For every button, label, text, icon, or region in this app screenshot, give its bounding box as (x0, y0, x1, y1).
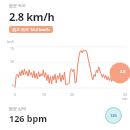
staticText: 최고 속도 14.2 km/h (12, 27, 50, 32)
button[interactable]: 평균 심박 (0, 106, 130, 124)
staticText: 126 (110, 113, 117, 118)
staticText: 10 (10, 59, 15, 64)
staticText: min (122, 97, 128, 101)
staticText: 평균 심박 (9, 106, 27, 111)
other: Heart rate zone (105, 107, 122, 124)
staticText: 20 (70, 92, 75, 97)
staticText: 126 bpm (9, 112, 47, 124)
staticText: 평균 속도 (9, 3, 27, 8)
staticText: 0 (14, 92, 17, 97)
staticText: 2.8 (120, 69, 126, 74)
staticText: 30 (123, 92, 128, 97)
staticText: km/h (7, 40, 15, 44)
staticText: 15 (10, 46, 15, 51)
staticText: 10 (42, 92, 47, 97)
button[interactable]: Speed chart (0, 39, 130, 101)
button[interactable]: 최고 속도 14.2 km/h (9, 26, 53, 33)
staticText: 2.8 km/h (9, 9, 55, 24)
staticText: 0 (12, 83, 15, 88)
